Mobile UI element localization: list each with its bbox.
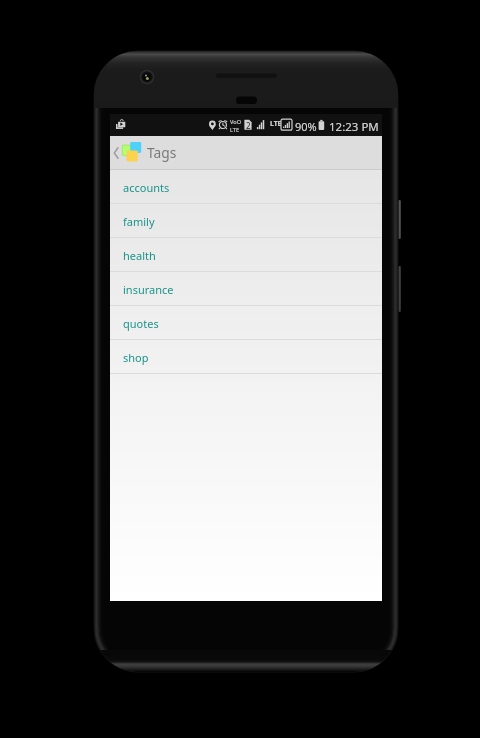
- staticText: shop: [123, 350, 149, 365]
- staticText: family: [123, 214, 155, 229]
- staticText: health: [123, 248, 156, 263]
- staticText: 2: [246, 120, 251, 131]
- staticText: quotes: [123, 316, 159, 331]
- button[interactable]: accounts: [110, 170, 382, 204]
- staticText: LTE: [230, 126, 240, 134]
- staticText: accounts: [123, 180, 170, 195]
- staticText: Tags: [147, 143, 177, 162]
- button[interactable]: insurance: [110, 272, 382, 306]
- staticText: 90%: [295, 119, 317, 134]
- button[interactable]: health: [110, 238, 382, 272]
- button[interactable]: shop: [110, 340, 382, 374]
- staticText: VoO: [230, 118, 241, 126]
- staticText: LTE: [270, 119, 282, 128]
- button[interactable]: family: [110, 204, 382, 238]
- button[interactable]: Navigate up: [110, 136, 147, 170]
- button[interactable]: quotes: [110, 306, 382, 340]
- staticText: insurance: [123, 282, 174, 297]
- staticText: 12:23 PM: [329, 119, 379, 135]
